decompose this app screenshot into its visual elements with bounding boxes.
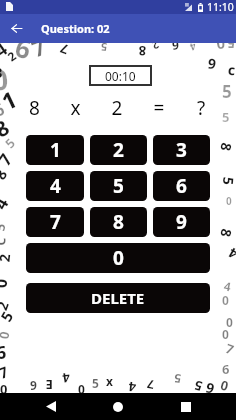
staticText: 8 [14, 95, 55, 121]
staticText: 5 [1, 134, 19, 152]
staticText: 5 [99, 40, 108, 55]
staticText: 0 [113, 245, 124, 271]
staticText: 7 [50, 209, 61, 235]
staticText: 6 [222, 360, 230, 378]
staticText: 0 [0, 329, 14, 340]
staticText: 6 [12, 29, 35, 66]
staticText: 2 [0, 298, 13, 313]
staticText: 1 [0, 82, 22, 116]
staticText: 2 [150, 37, 161, 54]
staticText: c [227, 60, 236, 79]
button[interactable]: 5 [90, 171, 147, 201]
staticText: 5 [0, 221, 10, 232]
staticText: 4 [0, 37, 12, 62]
staticText: 6 [0, 340, 7, 365]
staticText: 5 [219, 176, 236, 187]
staticText: 6 [0, 97, 8, 122]
staticText: 4 [188, 39, 198, 55]
staticText: Question: 02 [41, 21, 110, 36]
staticText: 2 [4, 47, 19, 64]
staticText: 2 [113, 137, 124, 163]
staticText: 00:10 [105, 68, 136, 84]
staticText: 7 [145, 376, 156, 393]
button[interactable]: Back [0, 14, 34, 43]
staticText: 4 [50, 173, 61, 199]
staticText: 4 [0, 193, 13, 214]
staticText: 5 [113, 173, 124, 199]
staticText: 4 [224, 243, 236, 264]
staticText: 0 [222, 292, 229, 308]
staticText: 6 [176, 173, 187, 199]
staticText: 4 [127, 378, 137, 396]
button[interactable]: 7 [26, 207, 84, 237]
staticText: 0 [226, 314, 233, 330]
button[interactable]: 6 [153, 171, 210, 201]
staticText: 0 [0, 380, 8, 398]
staticText: 5 [226, 34, 235, 53]
staticText: 0 [218, 376, 230, 396]
staticText: 8 [0, 113, 15, 144]
button[interactable]: Back [34, 393, 68, 420]
staticText: 3 [176, 137, 187, 163]
button[interactable]: DELETE [26, 283, 210, 313]
staticText: DELETE [91, 288, 145, 308]
staticText: 8 [113, 209, 124, 235]
button[interactable]: Recent apps [169, 393, 203, 420]
staticText: 5 [222, 108, 230, 126]
staticText: 8 [216, 141, 236, 154]
button[interactable]: 9 [153, 207, 210, 237]
staticText: 0 [215, 34, 226, 54]
staticText: 0 [222, 326, 229, 342]
staticText: 5 [0, 307, 17, 325]
staticText: 4 [223, 277, 232, 294]
staticText: x [55, 95, 96, 121]
button[interactable]: 8 [90, 207, 147, 237]
staticText: 6 [171, 38, 180, 54]
button[interactable]: 4 [26, 171, 84, 201]
staticText: E [45, 376, 53, 394]
staticText: 7 [27, 31, 50, 63]
staticText: 7 [0, 361, 11, 383]
staticText: 5 [92, 375, 99, 391]
staticText: 11:10 [207, 0, 234, 14]
staticText: 7 [223, 339, 236, 359]
staticText: 3 [0, 62, 3, 82]
staticText: 2 [96, 95, 138, 121]
button[interactable]: 1 [26, 135, 84, 165]
staticText: 1 [50, 137, 61, 163]
staticText: 0 [0, 278, 12, 288]
staticText: 8 [0, 165, 11, 183]
button[interactable]: 2 [90, 135, 147, 165]
staticText: 5 [173, 371, 182, 387]
staticText: 0 [0, 59, 11, 99]
button[interactable]: 0 [26, 243, 210, 273]
staticText: x [106, 373, 113, 389]
button[interactable]: Home [101, 393, 135, 420]
staticText: 0 [78, 381, 85, 397]
staticText: 9 [30, 377, 37, 393]
staticText: 2 [0, 252, 14, 263]
staticText: 9 [207, 53, 218, 74]
staticText: 9 [176, 209, 187, 235]
staticText: 5 [192, 376, 204, 396]
staticText: 7 [0, 149, 17, 170]
staticText: 6 [203, 378, 216, 399]
staticText: = [138, 95, 180, 121]
staticText: 8 [138, 42, 146, 60]
staticText: 5 [222, 80, 232, 103]
staticText: 7 [57, 39, 71, 59]
staticText: 4 [61, 368, 71, 387]
staticText: C [0, 236, 10, 246]
staticText: 0 [226, 194, 232, 208]
button[interactable]: 3 [153, 135, 210, 165]
staticText: ? [180, 95, 222, 121]
staticText: 8 [216, 227, 236, 240]
